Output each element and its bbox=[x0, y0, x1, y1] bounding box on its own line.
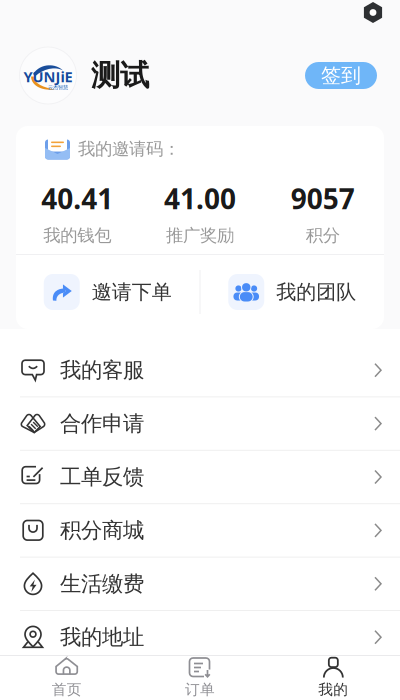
staticText: 我的地址 bbox=[60, 624, 144, 650]
staticText: 40.41 bbox=[41, 180, 113, 217]
staticText: 合作申请 bbox=[60, 410, 144, 437]
button[interactable]: 工单反馈 bbox=[0, 451, 400, 504]
staticText: 签到 bbox=[321, 63, 361, 88]
staticText: 我的邀请码： bbox=[78, 138, 180, 160]
button[interactable]: 首页 bbox=[0, 656, 133, 700]
button[interactable]: 我的客服 bbox=[0, 344, 400, 397]
staticText: 工单反馈 bbox=[60, 464, 144, 490]
staticText: 我的 bbox=[318, 680, 348, 698]
button[interactable]: 签到 bbox=[305, 62, 377, 89]
staticText: 积分 bbox=[306, 225, 340, 246]
staticText: 邀请下单 bbox=[92, 280, 172, 304]
staticText: 测试 bbox=[91, 57, 149, 93]
button[interactable]: 邀请下单 bbox=[16, 274, 199, 310]
staticText: 云杰智慧 bbox=[48, 84, 68, 91]
staticText: YUNJiE bbox=[23, 67, 72, 86]
button[interactable]: 生活缴费 bbox=[0, 558, 400, 611]
button[interactable]: 合作申请 bbox=[0, 397, 400, 451]
staticText: 积分商城 bbox=[60, 517, 144, 543]
staticText: 我的钱包 bbox=[43, 225, 111, 246]
button[interactable]: 订单 bbox=[133, 656, 267, 700]
staticText: 首页 bbox=[52, 680, 82, 698]
staticText: 我的团队 bbox=[276, 280, 356, 304]
staticText: 41.00 bbox=[164, 180, 236, 217]
button[interactable]: Settings bbox=[356, 0, 390, 29]
staticText: 我的客服 bbox=[60, 357, 144, 383]
button[interactable]: 我的地址 bbox=[0, 611, 400, 664]
staticText: 订单 bbox=[185, 680, 215, 698]
button[interactable]: 我的团队 bbox=[200, 274, 384, 310]
staticText: 生活缴费 bbox=[60, 571, 144, 597]
button[interactable]: 我的 bbox=[267, 656, 400, 700]
button[interactable]: 积分商城 bbox=[0, 504, 400, 558]
staticText: 9057 bbox=[291, 180, 355, 217]
staticText: 推广奖励 bbox=[166, 225, 234, 246]
